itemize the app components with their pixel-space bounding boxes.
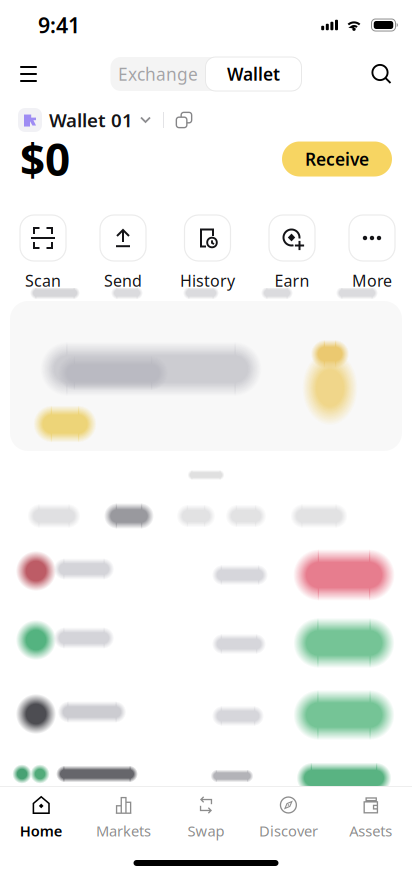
staticText: Swap <box>187 821 224 840</box>
staticText: History <box>180 270 235 291</box>
staticText: Scan <box>25 270 61 291</box>
staticText: Markets <box>96 821 151 840</box>
button[interactable]: Exchange <box>110 57 205 91</box>
staticText: Wallet <box>227 62 280 85</box>
staticText: Home <box>20 821 63 840</box>
staticText: Discover <box>259 821 318 840</box>
button[interactable]: Earn <box>269 215 315 291</box>
staticText: Receive <box>305 147 369 170</box>
button[interactable]: History <box>180 215 235 291</box>
button[interactable]: Receive <box>282 141 392 176</box>
button[interactable]: Markets <box>82 793 165 840</box>
button[interactable]: Discover <box>247 793 330 840</box>
button[interactable]: Home <box>0 793 82 840</box>
button[interactable]: More <box>349 215 395 291</box>
staticText: 9:41 <box>38 11 80 39</box>
staticText: Wallet 01 <box>49 108 133 132</box>
staticText: Send <box>104 270 142 291</box>
button[interactable]: Scan <box>20 215 66 291</box>
staticText: Assets <box>349 821 392 840</box>
staticText: Earn <box>274 270 309 291</box>
button[interactable]: Copy wallet address <box>176 112 192 128</box>
staticText: More <box>352 270 392 291</box>
staticText: Exchange <box>118 62 198 85</box>
button[interactable]: Wallet 01 <box>18 108 151 132</box>
button[interactable]: Send <box>100 215 146 291</box>
button[interactable]: Assets <box>330 793 412 840</box>
button[interactable]: Menu <box>0 66 37 82</box>
staticText: $0 <box>20 130 70 188</box>
button[interactable]: Swap <box>165 793 247 840</box>
button[interactable]: Search <box>370 62 412 85</box>
button[interactable]: Wallet <box>205 57 301 91</box>
